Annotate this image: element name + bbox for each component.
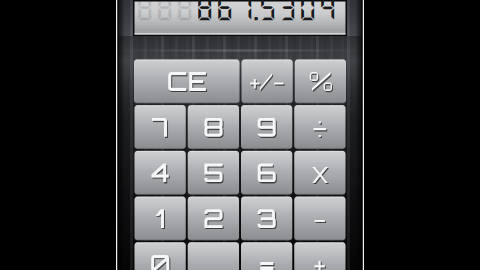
staticText: 9 [257, 112, 278, 144]
staticText: 1 [156, 204, 166, 235]
button[interactable]: 5 [188, 151, 239, 195]
button[interactable]: 7 [134, 105, 186, 149]
staticText: 1 [155, 203, 165, 234]
button[interactable]: − [294, 197, 345, 240]
button[interactable]: 6 [241, 151, 292, 195]
staticText: 5 [204, 158, 225, 190]
staticText: 5 [203, 157, 224, 189]
staticText: 7 [152, 111, 169, 143]
button[interactable]: +/- [241, 59, 293, 103]
staticText: . [211, 249, 217, 270]
button[interactable]: 2 [188, 197, 239, 240]
staticText: 9 [256, 111, 277, 143]
staticText: 867.5309 [194, 0, 337, 23]
staticText: x [312, 157, 330, 190]
staticText: 8 [203, 111, 224, 143]
staticText: CE [167, 65, 207, 97]
staticText: 6 [257, 158, 278, 190]
staticText: 3 [257, 204, 278, 235]
button[interactable]: x [294, 151, 345, 195]
button[interactable]: 9 [241, 105, 292, 149]
staticText: 6 [256, 157, 277, 189]
staticText: − [313, 202, 327, 235]
staticText: ÷ [314, 111, 328, 145]
staticText: − [314, 203, 328, 236]
button[interactable]: CE [134, 59, 239, 103]
staticText: +/- [251, 67, 286, 97]
staticText: x [311, 156, 329, 189]
button[interactable]: ÷ [294, 105, 345, 149]
staticText: + [314, 247, 326, 270]
button[interactable]: 4 [134, 151, 186, 195]
staticText: 7 [153, 112, 170, 144]
staticText: 0 [151, 249, 172, 270]
button[interactable]: . [188, 242, 239, 270]
staticText: 8 [204, 112, 225, 144]
button[interactable]: + [294, 242, 345, 270]
staticText: = [260, 249, 276, 270]
staticText: ÷ [313, 110, 327, 144]
staticText: % [309, 67, 333, 98]
staticText: 4 [152, 158, 170, 190]
staticText: 2 [203, 203, 224, 234]
staticText: 0 [150, 248, 171, 270]
staticText: CE [168, 67, 208, 98]
staticText: 4 [151, 157, 169, 189]
staticText: +/- [250, 66, 285, 96]
staticText: = [259, 248, 275, 270]
staticText: % [308, 65, 332, 97]
staticText: 888 [134, 0, 194, 23]
staticText: 3 [256, 203, 277, 234]
staticText: . [210, 248, 216, 270]
button[interactable]: = [241, 242, 292, 270]
button[interactable]: % [295, 59, 346, 103]
button[interactable]: 1 [134, 197, 186, 240]
button[interactable]: 3 [241, 197, 292, 240]
button[interactable]: 8 [188, 105, 239, 149]
button[interactable]: 0 [134, 242, 186, 270]
staticText: + [315, 248, 327, 270]
staticText: 2 [204, 204, 225, 235]
